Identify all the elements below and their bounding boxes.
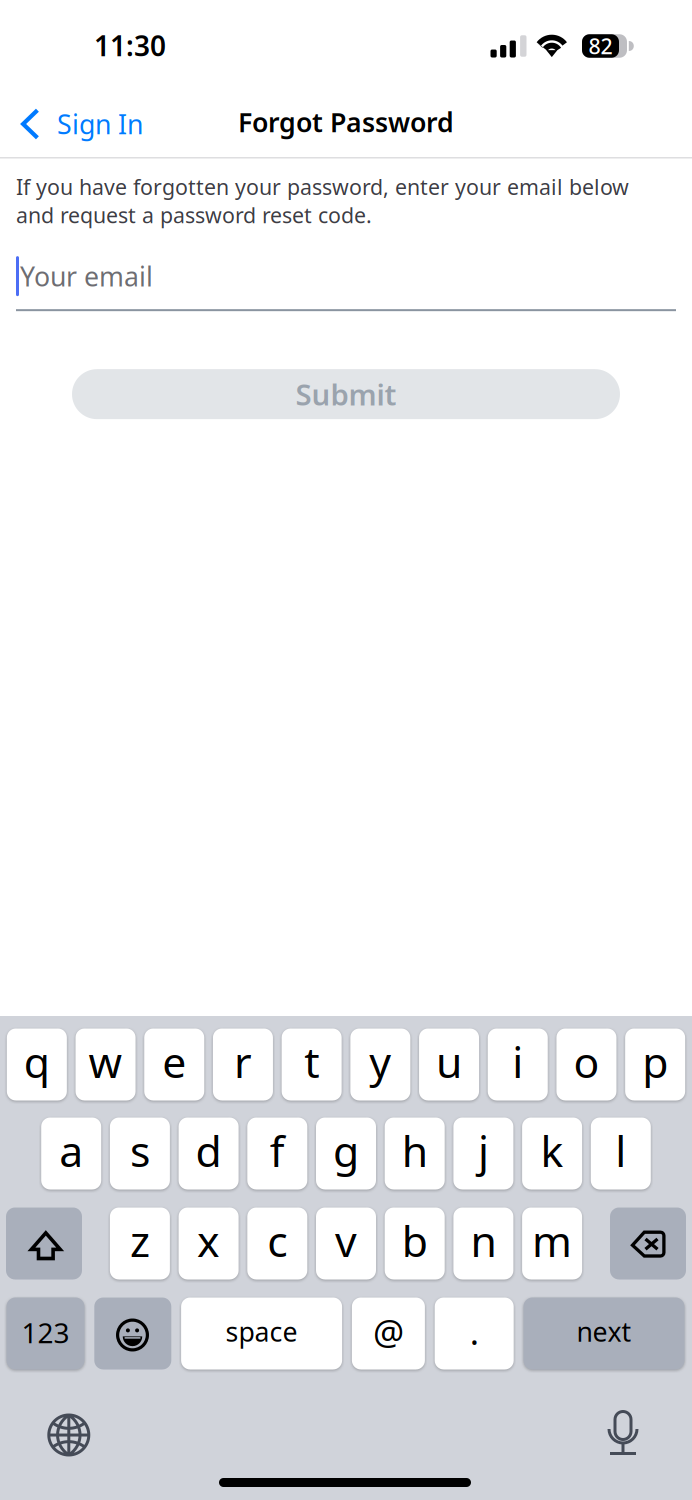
staticText: l xyxy=(615,1122,626,1179)
staticText: p xyxy=(642,1033,668,1090)
button[interactable]: Delete xyxy=(610,1207,686,1279)
button[interactable]: u xyxy=(419,1028,479,1100)
button[interactable]: Shift xyxy=(6,1207,82,1279)
staticText: m xyxy=(532,1212,572,1269)
button[interactable]: Submit xyxy=(72,369,620,419)
button[interactable]: h xyxy=(385,1117,445,1189)
button[interactable]: e xyxy=(144,1028,204,1100)
staticText: 82 xyxy=(588,32,612,60)
staticText: Your email xyxy=(20,258,153,294)
staticText: space xyxy=(226,1314,298,1349)
button[interactable]: @ xyxy=(352,1297,425,1369)
staticText: x xyxy=(197,1212,220,1269)
staticText: 123 xyxy=(21,1314,69,1351)
button[interactable]: n xyxy=(453,1207,513,1279)
button[interactable]: a xyxy=(41,1117,101,1189)
staticText: r xyxy=(234,1033,252,1090)
staticText: y xyxy=(369,1033,391,1090)
staticText: e xyxy=(162,1033,186,1090)
button[interactable]: q xyxy=(7,1028,67,1100)
staticText: s xyxy=(130,1122,150,1179)
staticText: Submit xyxy=(295,375,396,414)
button[interactable]: s xyxy=(110,1117,170,1189)
staticText: g xyxy=(333,1122,359,1179)
staticText: b xyxy=(402,1212,428,1269)
button[interactable]: Switch keyboard xyxy=(47,1413,90,1456)
button[interactable]: d xyxy=(179,1117,239,1189)
staticText: next xyxy=(576,1314,631,1349)
staticText: If you have forgotten your password, ent… xyxy=(16,172,629,229)
staticText: t xyxy=(304,1033,319,1090)
staticText: i xyxy=(512,1033,523,1090)
button[interactable]: b xyxy=(385,1207,445,1279)
staticText: u xyxy=(436,1033,462,1090)
staticText: d xyxy=(196,1122,222,1179)
button[interactable]: Sign In xyxy=(0,96,155,152)
staticText: @ xyxy=(373,1308,404,1354)
staticText: a xyxy=(59,1122,83,1179)
button[interactable]: k xyxy=(522,1117,582,1189)
staticText: h xyxy=(402,1122,428,1179)
button[interactable]: m xyxy=(522,1207,582,1279)
button[interactable]: space xyxy=(181,1297,342,1369)
button[interactable]: Emoji xyxy=(94,1297,171,1369)
staticText: k xyxy=(541,1122,564,1179)
button[interactable]: f xyxy=(247,1117,307,1189)
button[interactable]: y xyxy=(350,1028,410,1100)
button[interactable]: w xyxy=(76,1028,136,1100)
button[interactable]: r xyxy=(213,1028,273,1100)
staticText: n xyxy=(470,1212,496,1269)
button[interactable]: v xyxy=(316,1207,376,1279)
button[interactable]: c xyxy=(247,1207,307,1279)
button[interactable]: 123 xyxy=(6,1297,84,1369)
staticText: q xyxy=(24,1033,50,1090)
button[interactable]: o xyxy=(556,1028,616,1100)
staticText: 11:30 xyxy=(94,27,166,64)
staticText: Forgot Password xyxy=(238,104,454,140)
button[interactable]: x xyxy=(179,1207,239,1279)
button[interactable]: . xyxy=(435,1297,514,1369)
button[interactable]: t xyxy=(282,1028,342,1100)
button[interactable]: next xyxy=(523,1297,684,1369)
button[interactable]: j xyxy=(453,1117,513,1189)
staticText: f xyxy=(270,1122,285,1179)
staticText: c xyxy=(267,1212,287,1269)
staticText: z xyxy=(130,1212,150,1269)
staticText: Sign In xyxy=(57,106,143,142)
staticText: o xyxy=(573,1033,599,1090)
button[interactable]: g xyxy=(316,1117,376,1189)
staticText: j xyxy=(478,1122,489,1179)
button[interactable]: i xyxy=(488,1028,548,1100)
staticText: w xyxy=(89,1033,123,1090)
button[interactable]: Dictate xyxy=(607,1410,638,1456)
staticText: . xyxy=(470,1308,479,1354)
staticText: v xyxy=(335,1212,357,1269)
button[interactable]: z xyxy=(110,1207,170,1279)
button[interactable]: p xyxy=(625,1028,685,1100)
button[interactable]: l xyxy=(591,1117,651,1189)
